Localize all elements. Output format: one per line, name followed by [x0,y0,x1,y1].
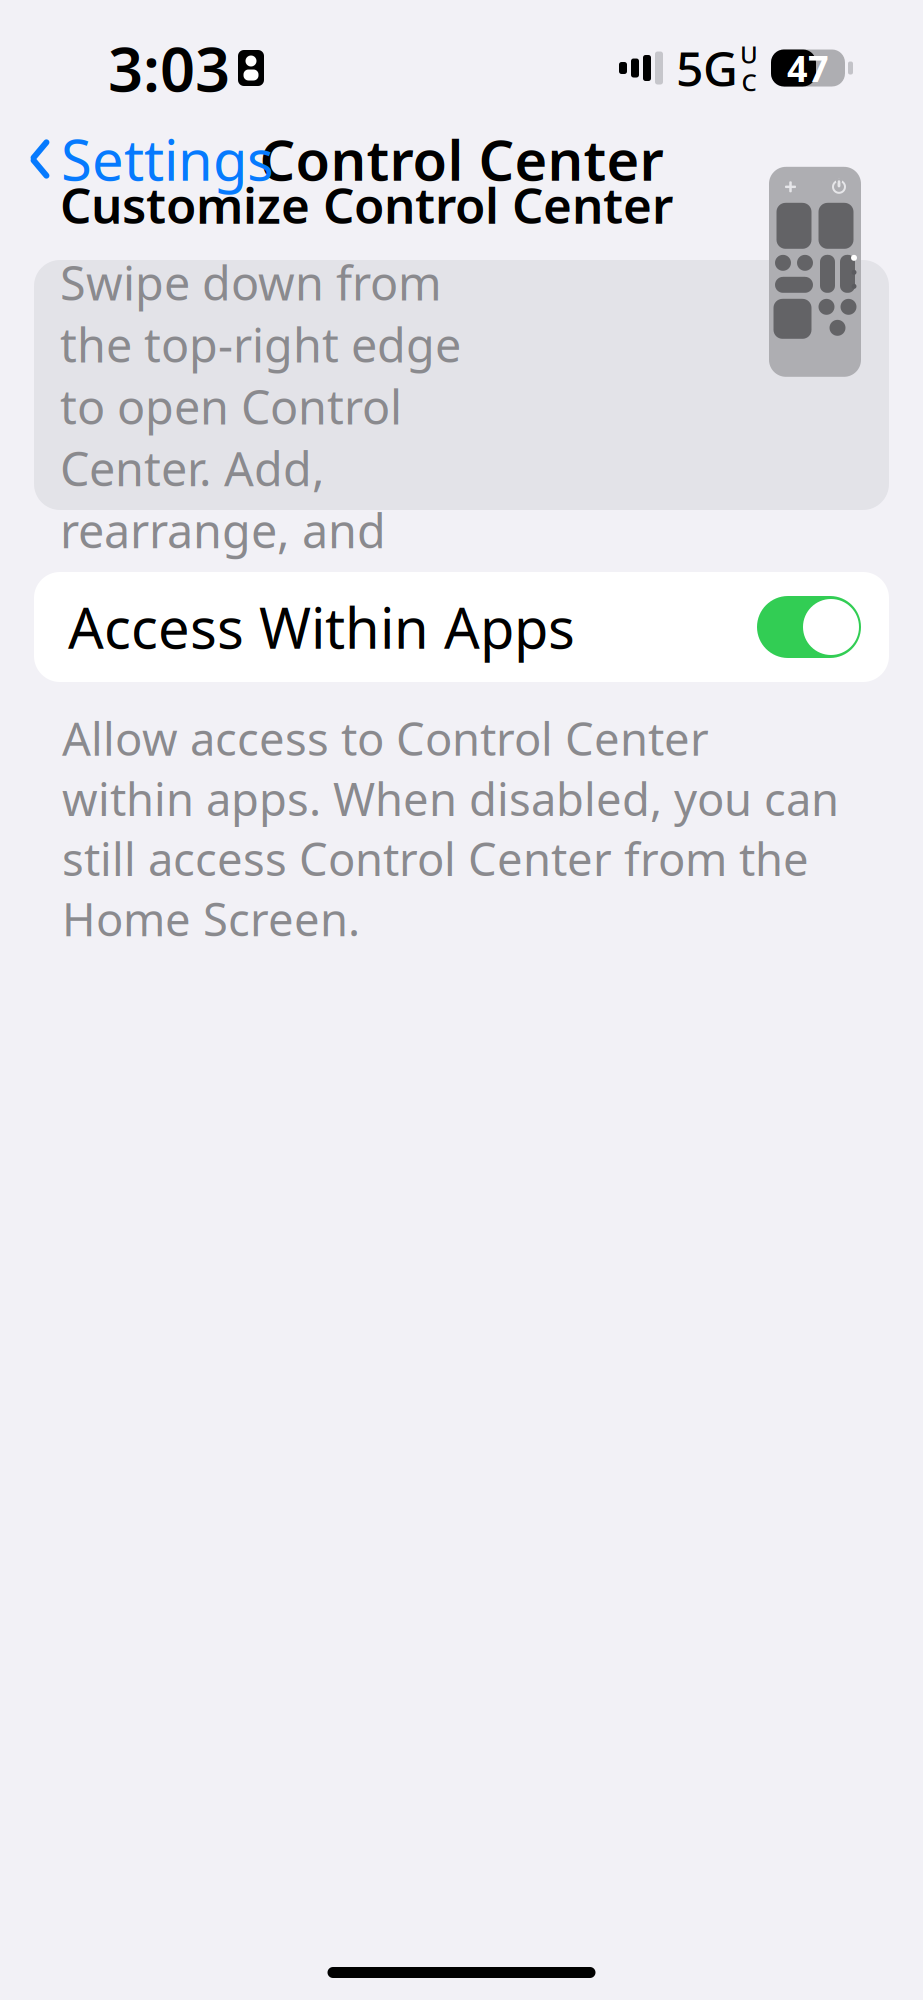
staticText: 47 [787,44,829,92]
button[interactable]: Settings [18,112,284,206]
staticText: 5G [676,36,738,100]
staticText: C [741,66,756,98]
staticText: U [740,38,758,70]
button[interactable]: Access Within Apps [34,572,889,682]
staticText: Customize Control Center [60,172,673,237]
staticText: Settings [61,122,274,196]
staticText: Control Center [259,122,663,196]
staticText: Allow access to Control Center within ap… [62,708,839,949]
staticText: Access Within Apps [68,590,575,664]
staticText: 3:03 [108,27,230,109]
staticText: Swipe down from the top-right edge to op… [60,251,461,623]
